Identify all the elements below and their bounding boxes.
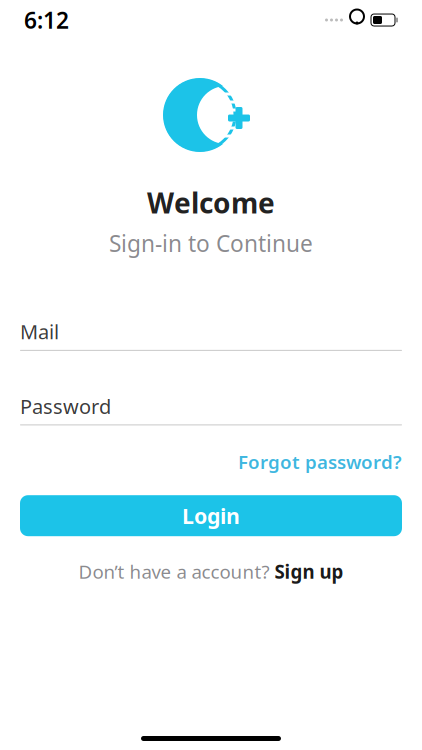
- staticText: Welcome: [147, 184, 275, 221]
- staticText: Forgot password?: [238, 449, 402, 474]
- staticText: Sign-in to Continue: [109, 228, 313, 258]
- staticText: Password: [20, 393, 111, 419]
- button[interactable]: Don’t have a account?: [78, 555, 343, 588]
- staticText: Login: [182, 501, 240, 530]
- staticText: Mail: [20, 318, 59, 345]
- button[interactable]: Login: [20, 495, 402, 536]
- staticText: Sign up: [274, 559, 343, 584]
- staticText: 6:12: [24, 5, 69, 35]
- staticText: Don’t have a account?: [78, 559, 269, 584]
- button[interactable]: Forgot password?: [238, 445, 402, 478]
